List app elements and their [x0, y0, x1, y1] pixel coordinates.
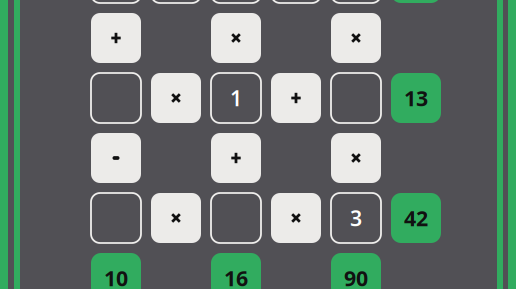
button[interactable]: Plus	[271, 73, 321, 123]
button[interactable]: Empty tile	[91, 73, 141, 123]
button[interactable]: Minus	[91, 133, 141, 183]
button[interactable]: Times	[211, 13, 261, 63]
staticText: 42	[404, 204, 428, 232]
staticText: 3	[350, 204, 362, 232]
button[interactable]: Times	[331, 13, 381, 63]
button[interactable]: 1	[211, 73, 261, 123]
button[interactable]: Plus	[91, 13, 141, 63]
staticText: 10	[104, 264, 128, 289]
button[interactable]: Empty tile	[331, 0, 381, 3]
button[interactable]: Empty tile	[91, 0, 141, 3]
staticText: 90	[344, 264, 368, 289]
button[interactable]: 3	[331, 193, 381, 243]
button[interactable]: Times	[271, 193, 321, 243]
button[interactable]: Empty tile	[271, 0, 321, 3]
button[interactable]: Empty tile	[211, 193, 261, 243]
button[interactable]: Empty tile	[211, 0, 261, 3]
button[interactable]: Times	[331, 133, 381, 183]
button[interactable]: Empty tile	[151, 0, 201, 3]
button[interactable]: Times	[151, 193, 201, 243]
button[interactable]: Empty tile	[331, 73, 381, 123]
button[interactable]: Plus	[211, 133, 261, 183]
staticText: 13	[404, 84, 428, 112]
button[interactable]: Times	[151, 73, 201, 123]
button[interactable]: Empty tile	[91, 193, 141, 243]
staticText: 16	[224, 264, 248, 289]
staticText: 1	[230, 84, 242, 112]
